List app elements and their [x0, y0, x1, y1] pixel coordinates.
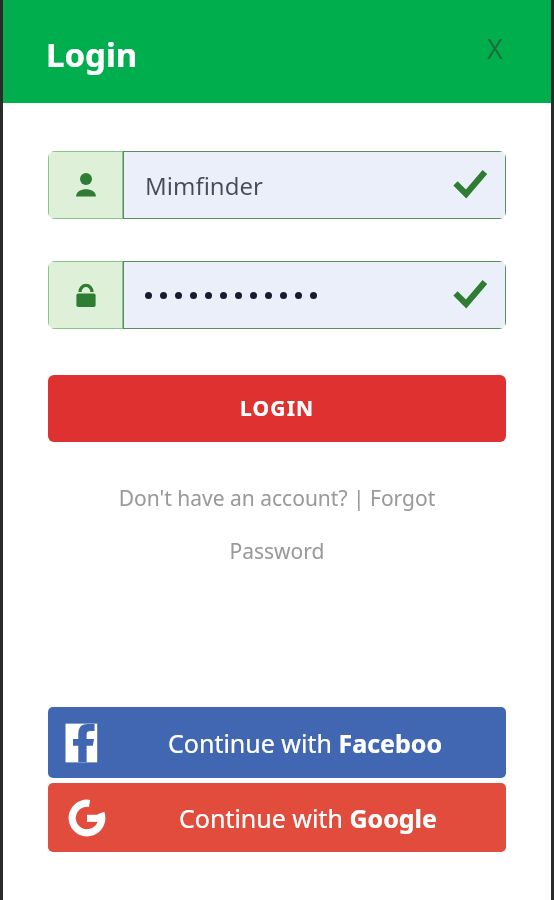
staticText: Don't have an account? | Forgot Password — [72, 484, 482, 565]
button[interactable]: Don't have an account? | Forgot Password — [72, 484, 482, 565]
button[interactable] — [48, 261, 506, 329]
staticText: Mimfinder — [145, 169, 263, 202]
staticText: LOGIN — [240, 394, 315, 423]
button[interactable]: Continue with Faceboo — [48, 707, 506, 778]
button[interactable]: Mimfinder — [48, 151, 506, 219]
button[interactable]: LOGIN — [48, 375, 506, 442]
staticText: Continue with Google — [179, 801, 437, 835]
button[interactable]: Close — [472, 25, 518, 71]
button[interactable]: Continue with Google — [48, 783, 506, 852]
staticText: Continue with Faceboo — [168, 726, 443, 760]
staticText: Login — [46, 32, 138, 77]
staticText: X — [487, 30, 503, 67]
